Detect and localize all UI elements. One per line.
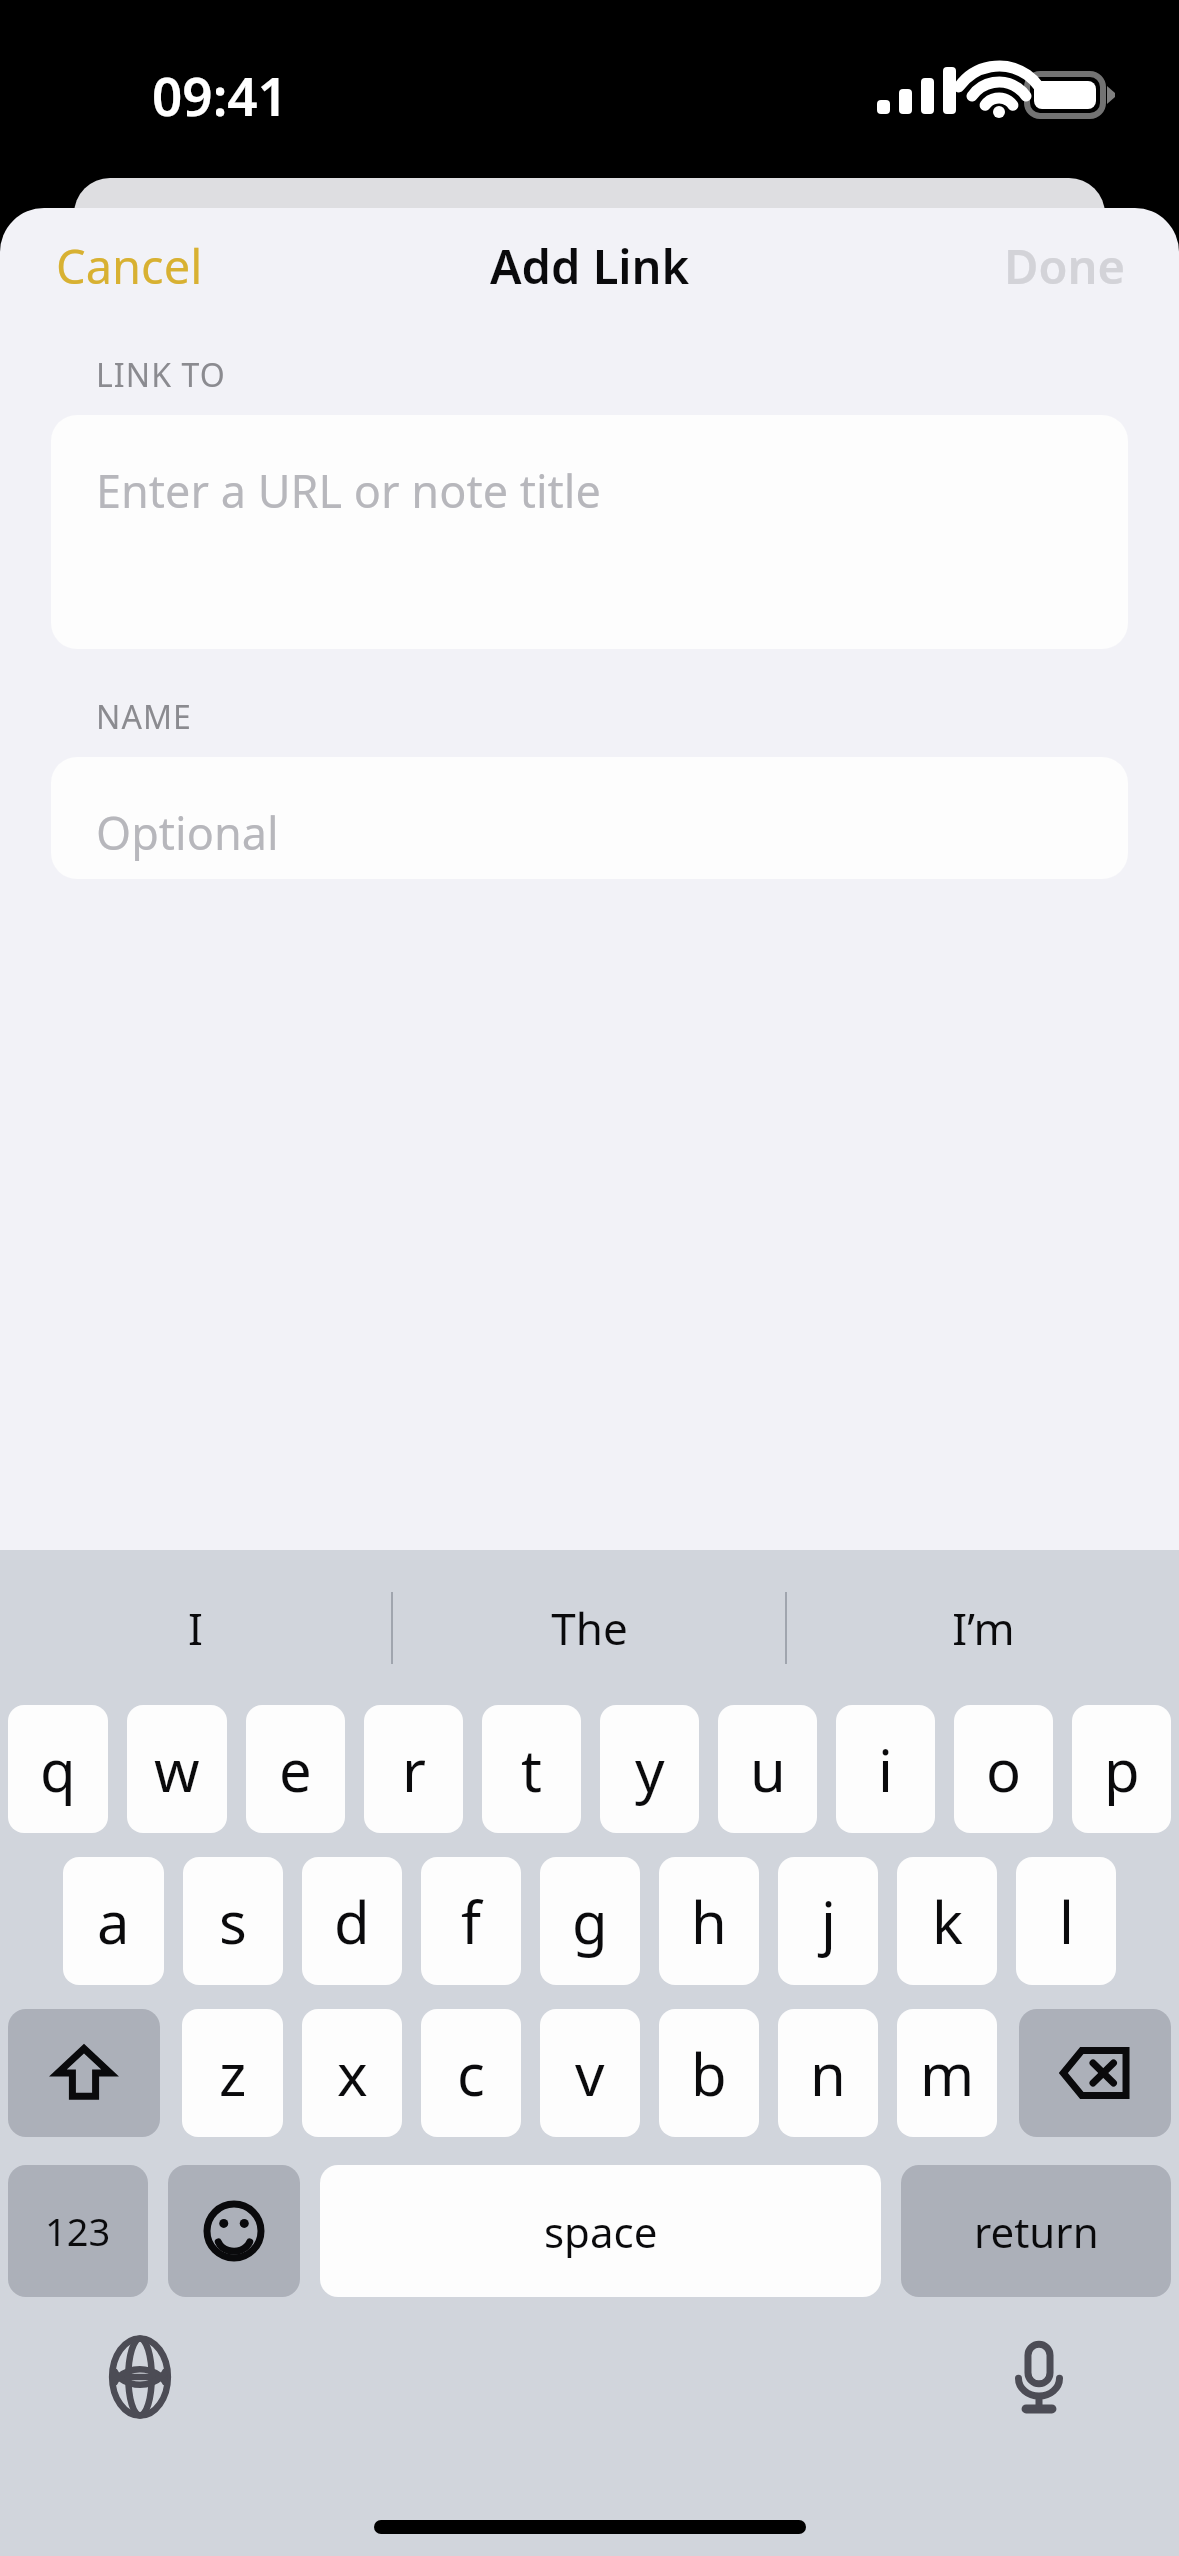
button[interactable]: r [364,1705,463,1833]
button[interactable]: n [778,2009,878,2137]
staticText: s [219,1882,247,1961]
button[interactable]: t [482,1705,581,1833]
button[interactable]: g [540,1857,640,1985]
staticText: i [878,1730,893,1809]
button[interactable]: w [127,1705,227,1833]
button[interactable]: u [718,1705,817,1833]
button[interactable]: p [1072,1705,1171,1833]
button[interactable]: Dictation [989,2327,1089,2427]
staticText: LINK TO [96,353,226,397]
button[interactable]: Switch keyboard language [90,2327,190,2427]
staticText: d [334,1882,370,1961]
button[interactable]: i [836,1705,935,1833]
button[interactable]: Backspace [1019,2009,1171,2137]
staticText: Optional [96,802,279,863]
button[interactable]: k [897,1857,997,1985]
button[interactable]: I [0,1550,391,1705]
staticText: Add Link [490,234,690,298]
staticText: l [1059,1882,1074,1961]
staticText: z [219,2034,247,2113]
staticText: w [154,1730,200,1809]
button[interactable]: Emoji [168,2165,300,2297]
button[interactable]: a [63,1857,164,1985]
staticText: e [279,1730,312,1809]
button[interactable]: v [540,2009,640,2137]
staticText: x [337,2034,368,2113]
button[interactable]: d [302,1857,402,1985]
staticText: f [461,1882,481,1961]
staticText: q [40,1730,76,1809]
button[interactable]: e [246,1705,345,1833]
staticText: return [974,2203,1099,2260]
button[interactable]: f [421,1857,521,1985]
button[interactable]: c [421,2009,521,2137]
staticText: space [544,2203,658,2260]
staticText: a [97,1882,130,1961]
staticText: c [457,2034,485,2113]
button[interactable]: l [1016,1857,1116,1985]
button[interactable]: The [393,1550,785,1705]
staticText: h [691,1882,727,1961]
button[interactable]: space [320,2165,881,2297]
staticText: r [402,1730,426,1809]
button[interactable]: Optional [51,757,1128,879]
button[interactable]: I’m [787,1550,1179,1705]
button[interactable]: 123 [8,2165,148,2297]
staticText: I [188,1598,203,1658]
staticText: Enter a URL or note title [96,460,601,521]
staticText: o [986,1730,1022,1809]
staticText: 09:41 [152,59,288,131]
button[interactable]: h [659,1857,759,1985]
staticText: Done [1004,234,1125,298]
staticText: NAME [96,695,192,739]
staticText: v [575,2034,605,2113]
button[interactable]: q [8,1705,108,1833]
staticText: n [810,2034,846,2113]
button[interactable]: Cancel [0,212,259,320]
button[interactable]: Done [950,212,1179,320]
staticText: b [691,2034,727,2113]
staticText: I’m [952,1598,1015,1658]
staticText: Cancel [56,234,203,298]
button[interactable]: Shift [8,2009,160,2137]
staticText: y [635,1730,665,1809]
button[interactable]: return [901,2165,1171,2297]
staticText: k [932,1882,963,1961]
staticText: p [1104,1730,1140,1809]
button[interactable]: x [302,2009,402,2137]
button[interactable]: o [954,1705,1053,1833]
staticText: t [521,1730,542,1809]
staticText: 123 [45,2205,111,2257]
staticText: j [821,1882,836,1961]
button[interactable]: b [659,2009,759,2137]
staticText: g [572,1882,608,1961]
button[interactable]: y [600,1705,699,1833]
button[interactable]: s [183,1857,283,1985]
staticText: u [750,1730,786,1809]
staticText: The [551,1598,628,1658]
button[interactable]: m [897,2009,997,2137]
button[interactable]: j [778,1857,878,1985]
staticText: m [920,2034,975,2113]
button[interactable]: Enter a URL or note title [51,415,1128,649]
button[interactable]: z [182,2009,283,2137]
